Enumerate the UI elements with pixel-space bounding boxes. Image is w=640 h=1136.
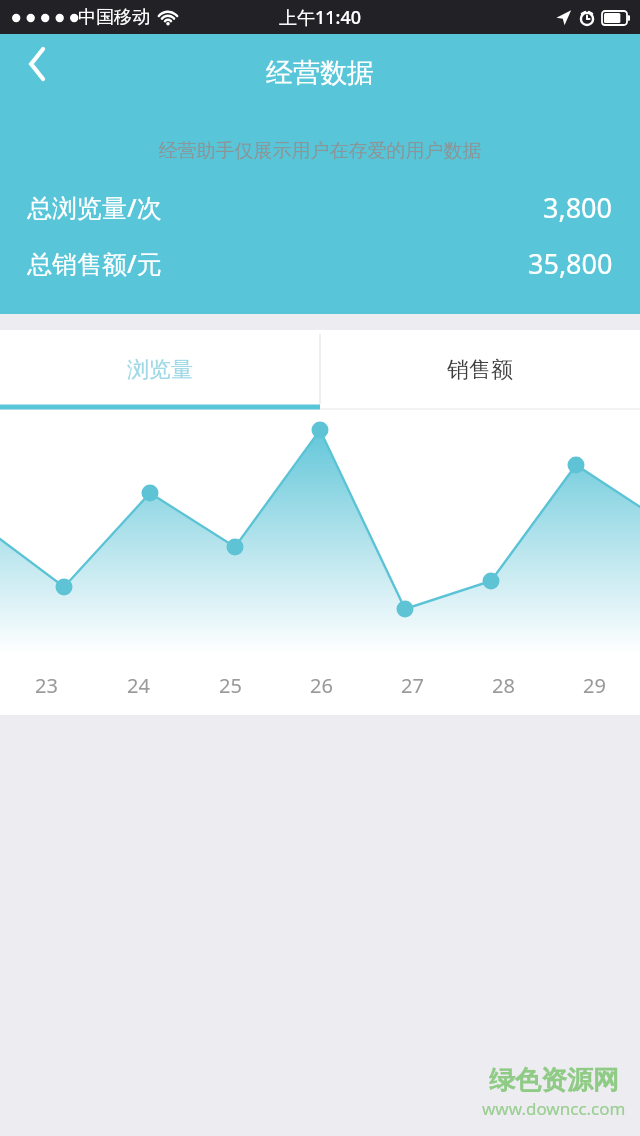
staticText: 销售额 bbox=[447, 356, 513, 384]
staticText: 3,800 bbox=[543, 189, 613, 225]
staticText: 29 bbox=[583, 672, 606, 699]
staticText: 绿色资源网 bbox=[489, 1064, 619, 1097]
staticText: 25 bbox=[219, 672, 242, 699]
staticText: 24 bbox=[127, 672, 150, 699]
staticText: 35,800 bbox=[528, 245, 613, 281]
staticText: 27 bbox=[401, 672, 424, 699]
staticText: 28 bbox=[492, 672, 515, 699]
staticText: 26 bbox=[310, 672, 333, 699]
staticText: www.downcc.com bbox=[482, 1097, 626, 1120]
button[interactable]: 销售额 bbox=[320, 330, 640, 410]
staticText: 23 bbox=[35, 672, 58, 699]
staticText: 中国移动 bbox=[78, 6, 150, 29]
staticText: 经营数据 bbox=[0, 56, 640, 90]
button[interactable]: 浏览量 bbox=[0, 330, 320, 410]
staticText: 总浏览量/次 bbox=[27, 190, 162, 224]
button[interactable]: Back bbox=[8, 34, 68, 94]
staticText: 浏览量 bbox=[127, 356, 193, 384]
staticText: 经营助手仅展示用户在存爱的用户数据 bbox=[0, 139, 640, 163]
staticText: 总销售额/元 bbox=[27, 246, 162, 280]
staticText: 上午11:40 bbox=[279, 5, 362, 30]
